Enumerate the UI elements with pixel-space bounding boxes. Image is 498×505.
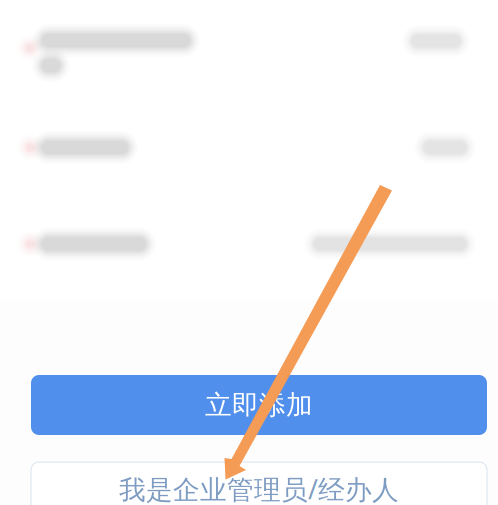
staticText: 立即添加 <box>205 389 313 421</box>
button[interactable]: 立即添加 <box>31 375 487 435</box>
staticText: 我是企业管理员/经办人 <box>119 471 399 505</box>
button[interactable]: 我是企业管理员/经办人 <box>31 462 487 505</box>
